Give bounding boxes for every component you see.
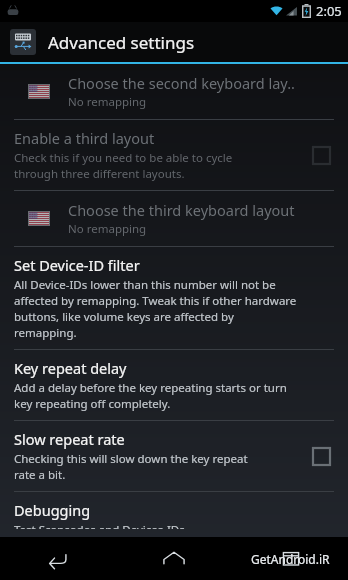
staticText: Advanced settings (48, 31, 195, 54)
staticText: buttons, like volume keys are affected b… (14, 309, 234, 325)
staticText: No remapping (68, 221, 147, 237)
button[interactable]: Key repeat delay (0, 350, 348, 420)
staticText: Set Device-ID filter (14, 255, 140, 275)
staticText: Checking this will slow down the key rep… (14, 451, 248, 467)
button[interactable]: Debugging (0, 492, 348, 537)
staticText: key repeating off completely. (14, 396, 171, 412)
staticText: Enable a third layout (14, 128, 155, 148)
button[interactable]: Choose the third keyboard layout (0, 191, 348, 246)
button[interactable]: Recent apps (232, 537, 348, 580)
staticText: All Device-IDs lower than this number wi… (14, 277, 276, 293)
button[interactable]: Enable a third layout (0, 120, 348, 190)
button[interactable]: Home (116, 537, 232, 580)
staticText: Check this if you need to be able to cyc… (14, 150, 233, 166)
staticText: No remapping (68, 94, 147, 110)
staticText: Add a delay before the key repeating sta… (14, 380, 287, 396)
staticText: Test Scancodes and Devices-IDs (14, 522, 185, 529)
staticText: Debugging (14, 500, 91, 520)
staticText: Choose the second keyboard lay.. (68, 73, 295, 93)
staticText: affected by remapping. Tweak this if oth… (14, 293, 297, 309)
button[interactable]: Back (0, 537, 116, 580)
button[interactable]: Choose the second keyboard lay.. (0, 64, 348, 119)
button[interactable]: Set Device-ID filter (0, 247, 348, 349)
staticText: remapping. (14, 325, 77, 341)
staticText: 2:05 (316, 2, 342, 20)
staticText: rate a bit. (14, 467, 66, 483)
staticText: Slow repeat rate (14, 429, 125, 449)
staticText: GetAndroid.iR (251, 551, 330, 567)
staticText: Choose the third keyboard layout (68, 200, 295, 220)
button[interactable]: Slow repeat rate (0, 421, 348, 491)
button[interactable]: Toggle Slow repeat rate (304, 439, 338, 473)
button[interactable]: App icon (10, 29, 36, 55)
button[interactable]: Toggle Enable a third layout (304, 138, 338, 172)
staticText: Key repeat delay (14, 358, 127, 378)
staticText: through three different layouts. (14, 166, 185, 182)
